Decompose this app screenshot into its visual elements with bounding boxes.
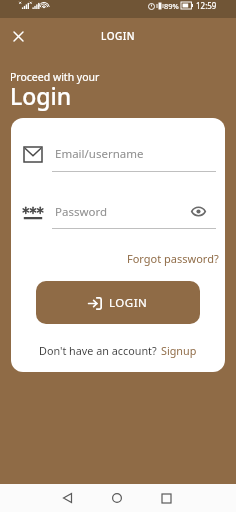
button[interactable]: Signup	[161, 343, 197, 358]
staticText: Signup	[161, 343, 197, 358]
button[interactable]: LOGIN	[36, 281, 200, 324]
button[interactable]: Forgot password?	[127, 251, 219, 266]
button[interactable]: Close	[4, 22, 33, 51]
button[interactable]: Home	[103, 484, 131, 512]
button[interactable]: Back	[54, 484, 82, 512]
button[interactable]: Recents	[152, 484, 180, 512]
staticText: Login	[10, 80, 72, 111]
button[interactable]: Show password	[186, 200, 210, 223]
staticText: 12:59	[196, 0, 217, 11]
staticText: Proceed with your	[10, 70, 100, 84]
staticText: Email/username	[55, 146, 144, 162]
staticText: LOGIN	[101, 29, 136, 43]
staticText: Password	[55, 204, 108, 220]
staticText: 89%	[164, 1, 179, 11]
staticText: Forgot password?	[127, 251, 219, 266]
staticText: Don't have an account?	[39, 343, 157, 358]
staticText: LOGIN	[109, 295, 148, 311]
